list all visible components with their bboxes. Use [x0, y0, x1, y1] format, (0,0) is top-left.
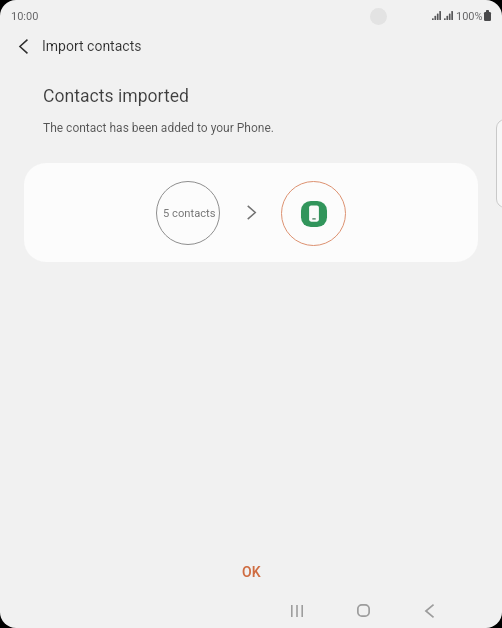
button[interactable]: Recents	[277, 591, 317, 628]
staticText: OK	[242, 564, 261, 580]
staticText: The contact has been added to your Phone…	[43, 121, 274, 135]
button[interactable]: Back	[409, 591, 449, 628]
staticText: 10:00	[11, 10, 39, 23]
staticText: Import contacts	[42, 38, 142, 54]
button[interactable]: OK	[0, 555, 502, 589]
staticText: Contacts imported	[43, 86, 189, 107]
staticText: 5 contacts	[163, 207, 216, 220]
button[interactable]: Back	[3, 26, 43, 66]
staticText: 100%	[456, 10, 483, 23]
button[interactable]: Home	[343, 590, 383, 628]
